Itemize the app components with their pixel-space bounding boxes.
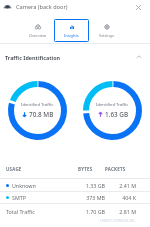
staticText: 2.41 M xyxy=(105,182,136,189)
staticText: Camera (back door) xyxy=(16,3,68,11)
staticText: Identified Traffic xyxy=(21,102,54,108)
staticText: 373 MB xyxy=(78,194,105,201)
button[interactable]: Close xyxy=(133,2,143,12)
staticText: Insights xyxy=(64,33,79,38)
button[interactable]: Settings xyxy=(89,19,124,42)
staticText: SMTP xyxy=(12,194,26,201)
staticText: BYTES xyxy=(78,166,105,172)
staticText: Unknown xyxy=(12,182,36,189)
button[interactable]: Unknown xyxy=(0,179,150,191)
button[interactable]: Insights xyxy=(54,19,89,42)
staticText: Settings xyxy=(99,33,114,38)
staticText: UBNT-FORUM.NL xyxy=(100,218,136,224)
staticText: Identified Traffic xyxy=(96,102,129,108)
staticText: 1.33 GB xyxy=(78,182,105,189)
button[interactable]: SMTP xyxy=(0,192,150,203)
staticText: USAGE xyxy=(6,166,22,172)
staticText: 2.81 M xyxy=(105,208,136,215)
staticText: 70.8 MB xyxy=(29,110,54,119)
staticText: Overview xyxy=(29,33,46,38)
staticText: Traffic Identification xyxy=(5,54,61,61)
staticText: 404 K xyxy=(105,194,136,201)
button[interactable]: Overview xyxy=(20,19,54,42)
staticText: 1.70 GB xyxy=(78,208,105,215)
staticText: PACKETS xyxy=(105,166,136,172)
staticText: 1.63 GB xyxy=(105,110,129,119)
button[interactable]: Traffic Identification xyxy=(0,48,150,66)
staticText: Total Traffic xyxy=(6,208,35,215)
